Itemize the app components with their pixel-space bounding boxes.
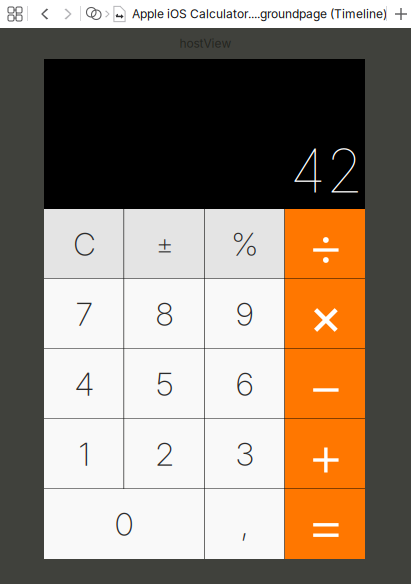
button[interactable]: Divide [285, 209, 365, 279]
button[interactable]: Multiply [285, 279, 365, 349]
staticText: 3 [236, 435, 254, 473]
button[interactable]: 0 [44, 489, 204, 559]
button[interactable]: 5 [124, 349, 204, 419]
button[interactable]: 7 [44, 279, 124, 349]
staticText: hostView [179, 36, 231, 51]
staticText: , [241, 505, 249, 543]
button[interactable]: 1 [44, 419, 124, 489]
staticText: 8 [155, 295, 173, 333]
staticText: 9 [236, 295, 254, 333]
button[interactable]: ± [124, 209, 204, 279]
button[interactable]: Add [285, 419, 365, 489]
staticText: 6 [236, 365, 254, 403]
button[interactable]: Subtract [285, 349, 365, 419]
staticText: 7 [76, 295, 93, 333]
staticText: C [73, 225, 95, 263]
button[interactable]: Equals [285, 489, 365, 559]
button[interactable]: 6 [204, 349, 285, 419]
button[interactable]: 3 [204, 419, 285, 489]
button[interactable]: Back [33, 0, 55, 28]
staticText: 42 [290, 134, 363, 207]
staticText: 0 [115, 505, 134, 543]
button[interactable]: 9 [204, 279, 285, 349]
button[interactable]: 2 [124, 419, 204, 489]
button[interactable]: 4 [44, 349, 124, 419]
button[interactable]: Add [391, 0, 411, 28]
button[interactable]: Expand [104, 0, 112, 28]
button[interactable]: , [204, 489, 285, 559]
staticText: ± [156, 227, 173, 261]
staticText: % [231, 225, 258, 263]
button[interactable]: 8 [124, 279, 204, 349]
staticText: 1 [79, 435, 90, 473]
button[interactable]: Related items [85, 0, 103, 28]
button[interactable]: C [44, 209, 124, 279]
button[interactable]: Forward [58, 0, 80, 28]
staticText: 4 [75, 365, 94, 403]
button[interactable]: Library [2, 0, 28, 28]
button[interactable]: % [204, 209, 285, 279]
staticText: 2 [155, 435, 173, 473]
staticText: 5 [156, 365, 173, 403]
staticText: Apple iOS Calculator....groundpage (Time… [132, 7, 387, 21]
button[interactable]: Apple iOS Calculator....groundpage (Time… [113, 0, 387, 28]
